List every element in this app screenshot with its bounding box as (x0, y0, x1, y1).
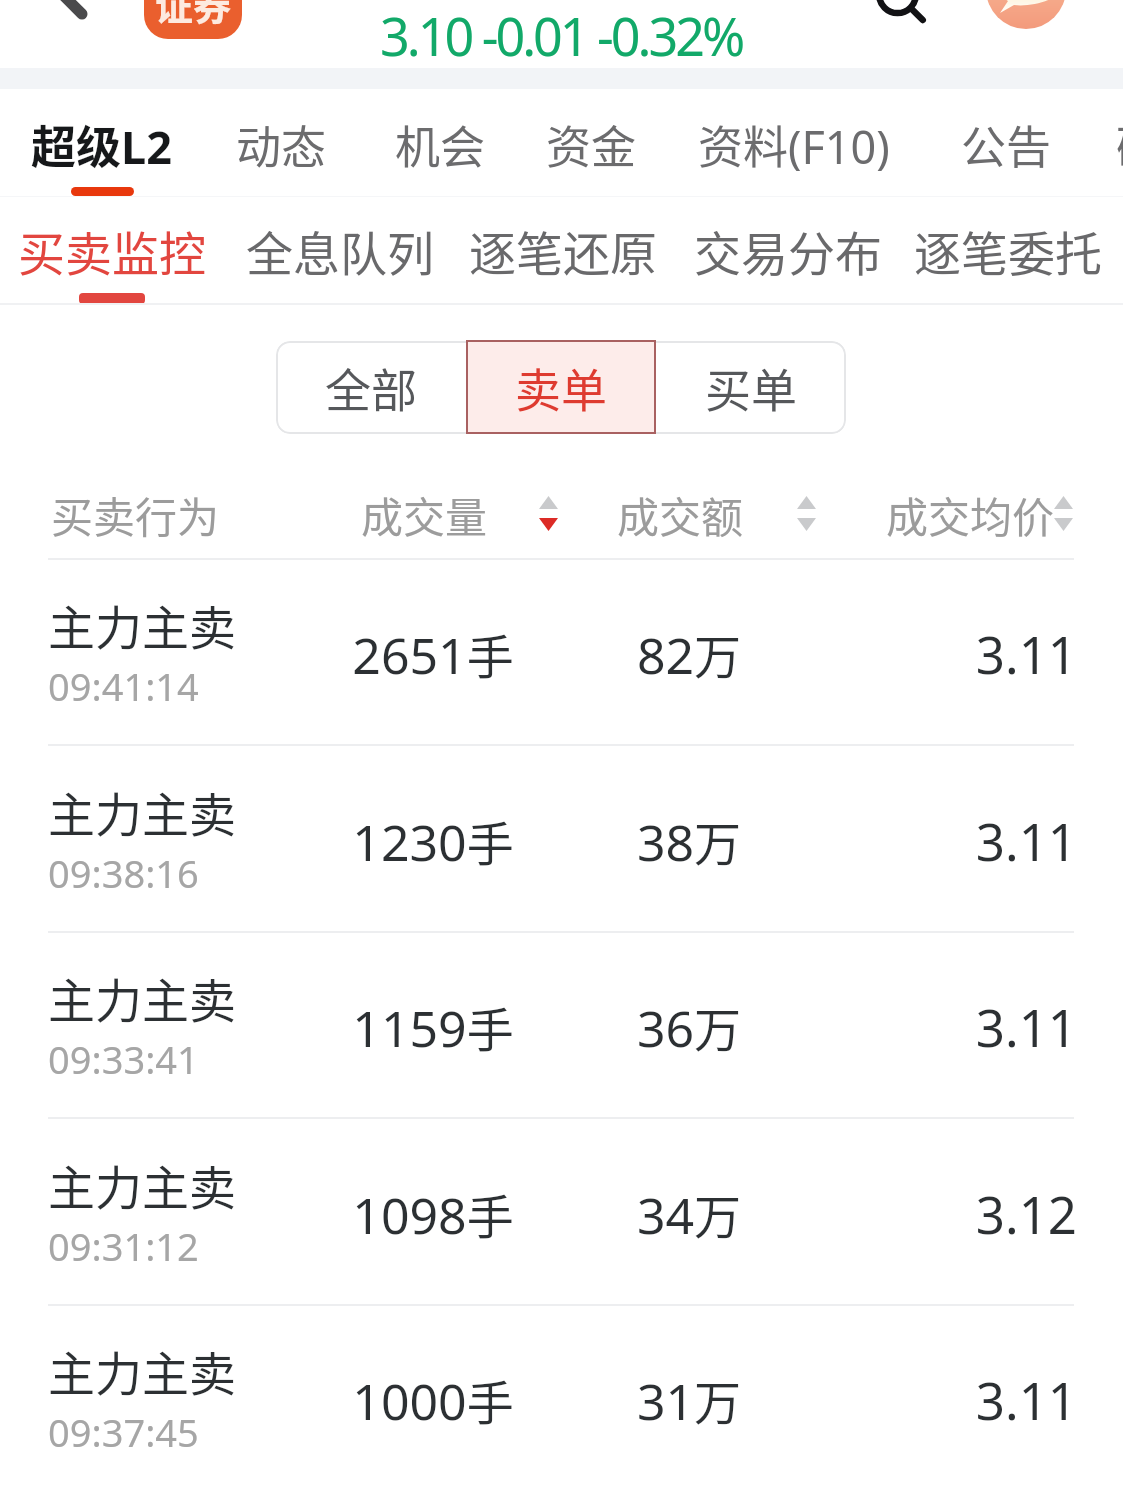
staticText: 超级L2 (31, 112, 172, 177)
button[interactable]: 主力主卖 (0, 746, 1123, 933)
button[interactable]: Back (30, 0, 130, 68)
staticText: 主力主卖 (48, 590, 236, 658)
staticText: 38万 (589, 806, 789, 875)
button[interactable]: Search (848, 0, 948, 30)
button[interactable]: 逐笔委托 (914, 196, 1102, 304)
staticText: 主力主卖 (48, 963, 236, 1031)
staticText: 机会 (395, 112, 486, 177)
button[interactable]: 交易分布 (694, 196, 882, 304)
staticText: 1000手 (303, 1365, 563, 1434)
staticText: 3.11 (877, 619, 1077, 688)
staticText: 逐笔还原 (469, 216, 657, 284)
button[interactable]: Securities (144, 0, 242, 39)
staticText: 1230手 (303, 806, 563, 875)
button[interactable]: 逐笔还原 (469, 196, 657, 304)
button[interactable]: 主力主卖 (0, 1119, 1123, 1306)
staticText: 09:31:12 (48, 1220, 199, 1272)
staticText: 1159手 (303, 992, 563, 1061)
button[interactable]: 超级L2 (31, 91, 172, 198)
staticText: 主力主卖 (48, 1336, 236, 1404)
staticText: 34万 (589, 1179, 789, 1248)
staticText: 成交均价 (886, 484, 1055, 545)
staticText: 3.10 -0.01 -0.32% (380, 0, 743, 71)
staticText: 3.11 (877, 806, 1077, 875)
staticText: 研 (1116, 112, 1123, 177)
staticText: 资金 (546, 112, 637, 177)
button[interactable]: 卖单 (466, 340, 656, 434)
button[interactable]: 研 (1116, 91, 1123, 198)
button[interactable]: 机会 (395, 91, 486, 198)
staticText: 1098手 (303, 1179, 563, 1248)
button[interactable]: 全息队列 (246, 196, 434, 304)
button[interactable]: 资料(F10) (698, 91, 890, 198)
staticText: 交易分布 (694, 216, 882, 284)
button[interactable]: 资金 (546, 91, 637, 198)
button[interactable]: Profile (986, 0, 1066, 29)
staticText: 2651手 (303, 619, 563, 688)
staticText: 09:37:45 (48, 1406, 199, 1458)
staticText: 31万 (589, 1365, 789, 1434)
staticText: 公告 (961, 112, 1052, 177)
button[interactable]: 公告 (961, 91, 1052, 198)
staticText: 09:38:16 (48, 847, 199, 899)
button[interactable]: 主力主卖 (0, 932, 1123, 1119)
staticText: 卖单 (515, 354, 607, 421)
staticText: 动态 (236, 112, 327, 177)
button[interactable]: Sort (528, 486, 569, 541)
staticText: 买卖行为 (51, 484, 220, 545)
staticText: 主力主卖 (48, 1150, 236, 1218)
button[interactable]: 主力主卖 (0, 559, 1123, 746)
staticText: 3.11 (877, 1365, 1077, 1434)
staticText: 买单 (705, 354, 797, 421)
staticText: 3.12 (877, 1179, 1077, 1248)
staticText: 资料(F10) (698, 112, 890, 177)
button[interactable]: 全部 (276, 341, 466, 434)
staticText: 全部 (325, 354, 417, 421)
button[interactable]: 动态 (236, 91, 327, 198)
staticText: 证券 (155, 0, 232, 31)
button[interactable]: 买卖监控 (18, 196, 206, 304)
staticText: 82万 (589, 619, 789, 688)
staticText: 09:33:41 (48, 1033, 199, 1085)
button[interactable]: Sort (786, 486, 827, 541)
staticText: 全息队列 (246, 216, 434, 284)
staticText: 主力主卖 (48, 777, 236, 845)
button[interactable]: Sort (1043, 486, 1084, 541)
button[interactable]: 买单 (656, 341, 846, 434)
staticText: 成交量 (361, 484, 488, 545)
staticText: 09:41:14 (48, 660, 199, 712)
button[interactable]: 主力主卖 (0, 1305, 1123, 1487)
staticText: 买卖监控 (18, 216, 206, 284)
staticText: 逐笔委托 (914, 216, 1102, 284)
staticText: 36万 (589, 992, 789, 1061)
staticText: 3.11 (877, 992, 1077, 1061)
staticText: 成交额 (617, 484, 744, 545)
